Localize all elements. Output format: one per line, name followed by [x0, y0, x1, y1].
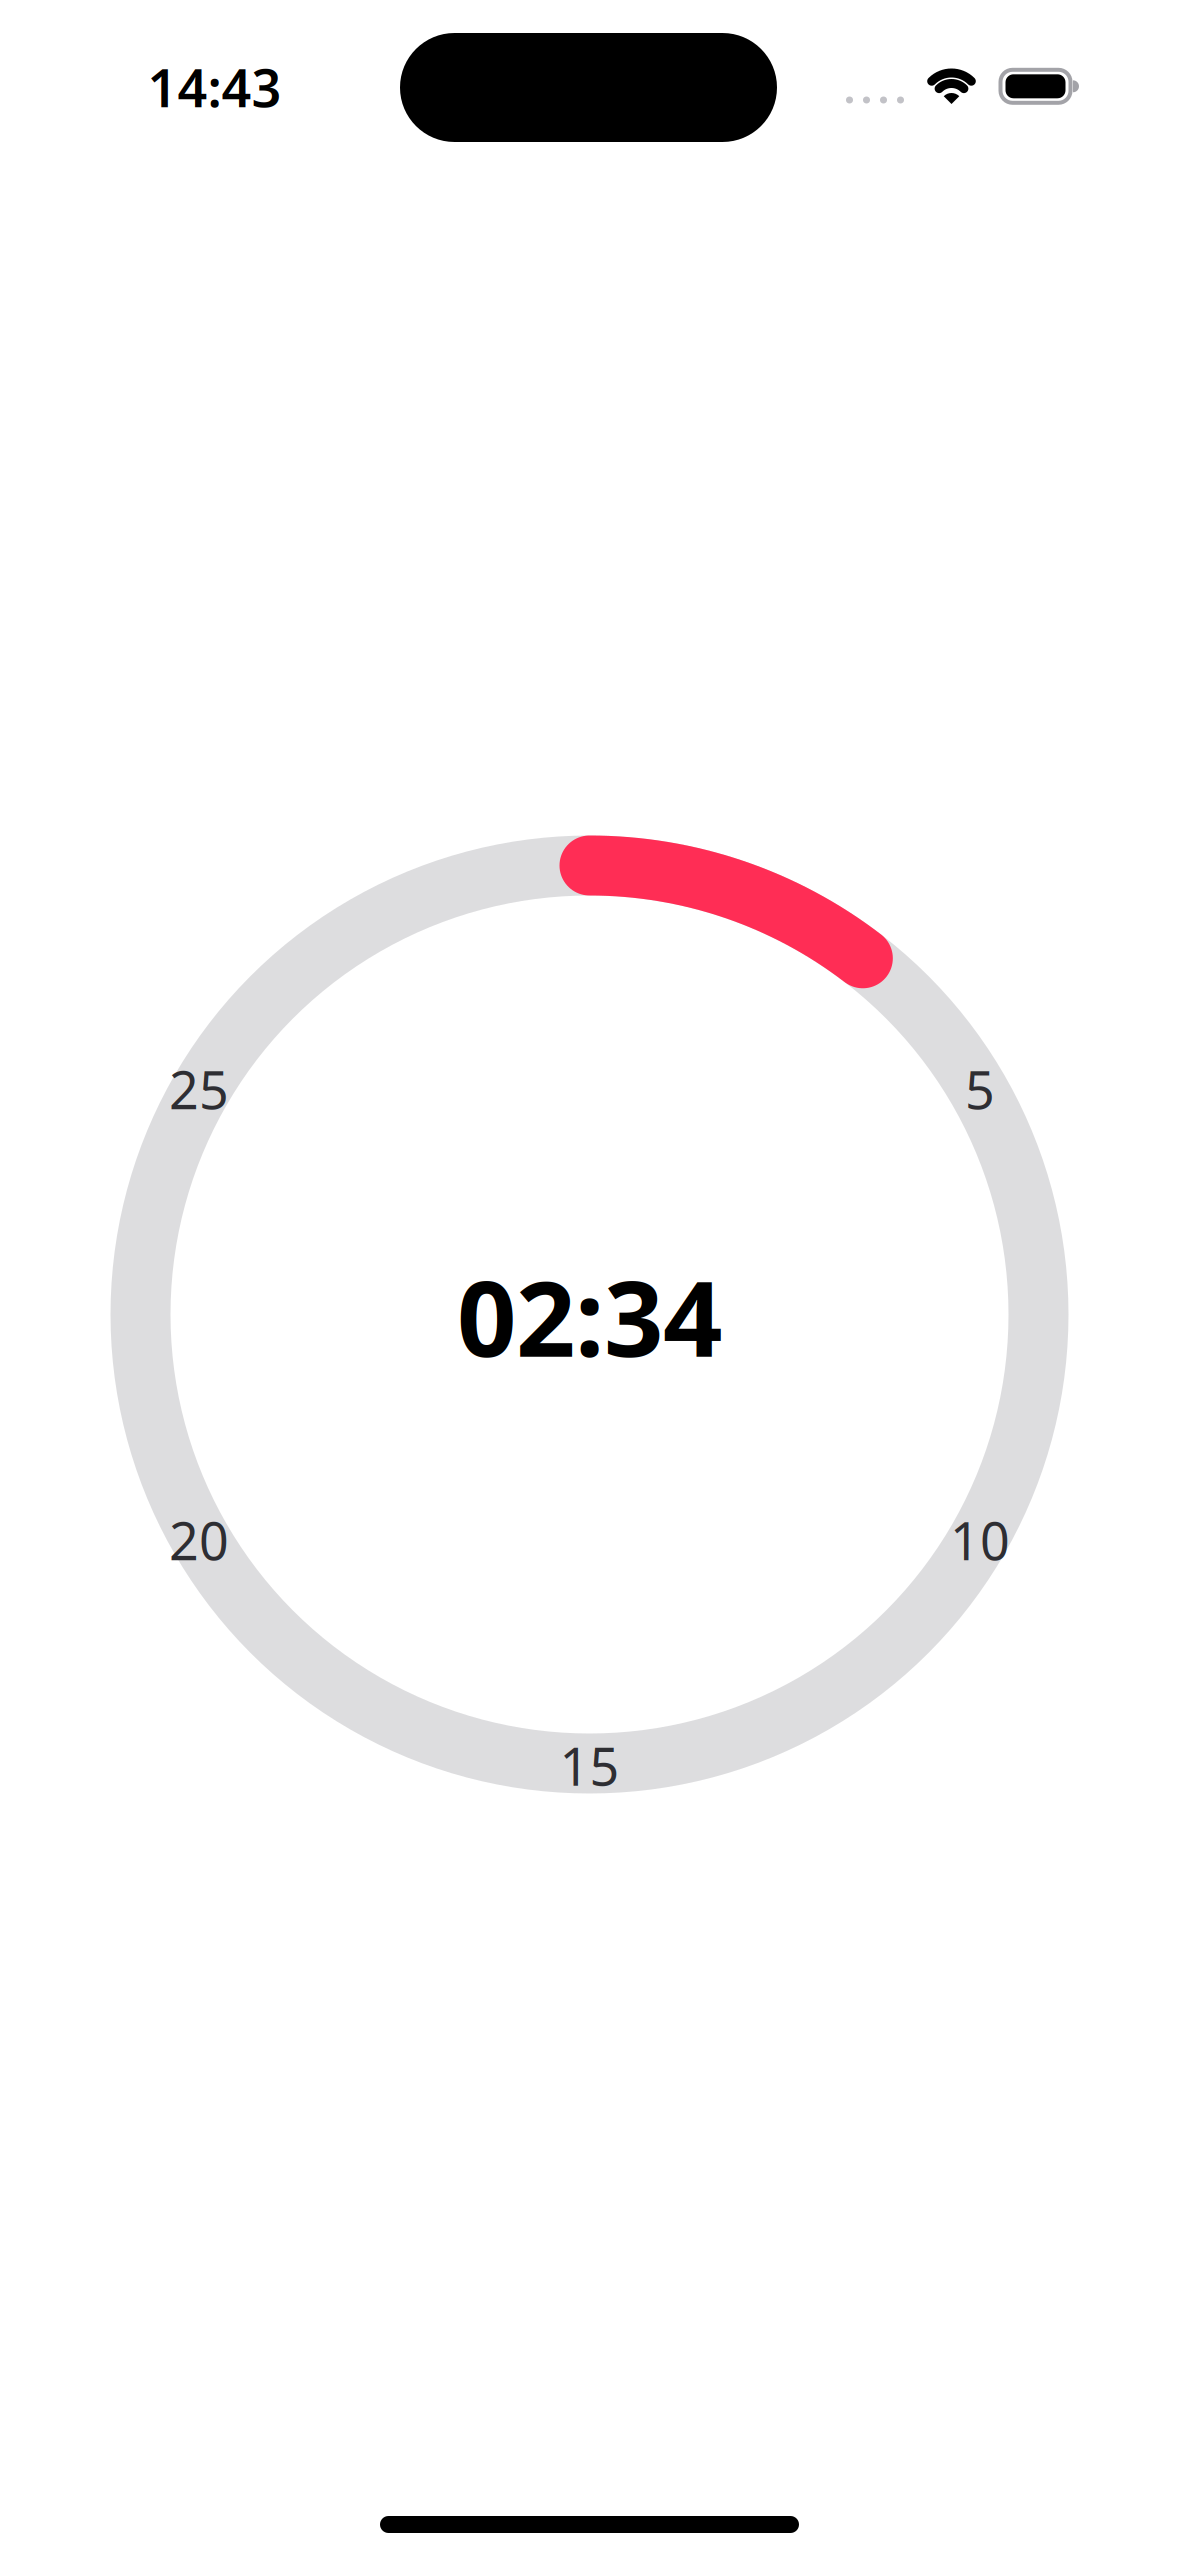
staticText: 02:34 [457, 1247, 722, 1385]
staticText: 15 [559, 1731, 619, 1800]
staticText: 10 [950, 1505, 1010, 1575]
staticText: 20 [169, 1505, 229, 1575]
staticText: 5 [965, 1054, 995, 1124]
button[interactable] [400, 33, 777, 142]
staticText: 14:43 [147, 52, 281, 122]
staticText: 25 [169, 1054, 229, 1124]
